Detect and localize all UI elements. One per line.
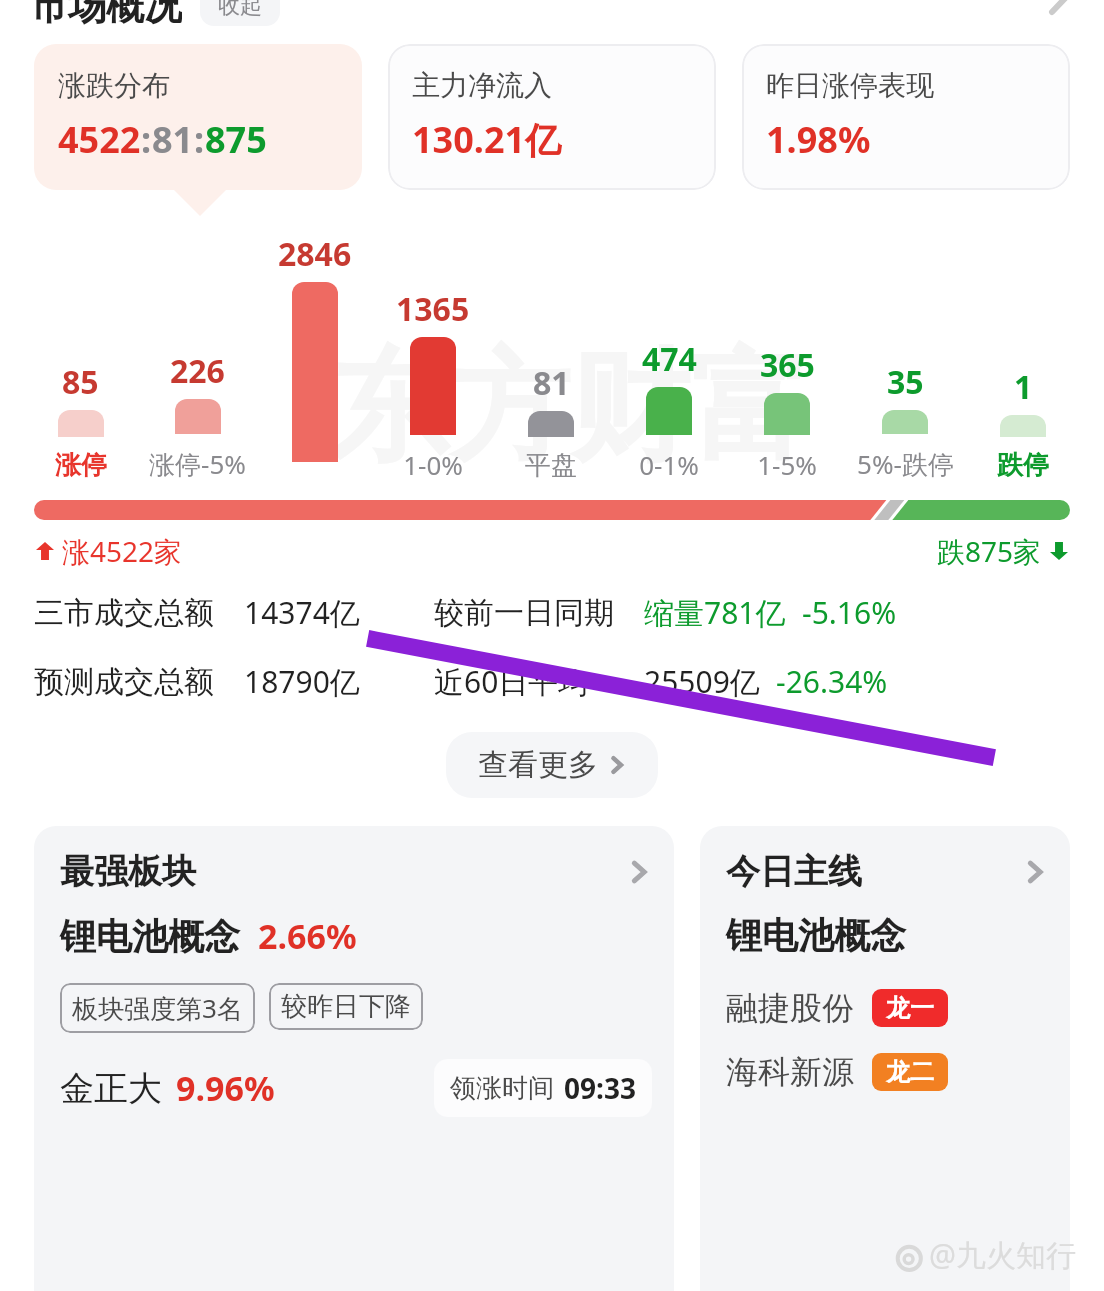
staticText: 三市成交总额 [34, 594, 244, 632]
button[interactable]: 85 [22, 232, 139, 482]
staticText: 跌875家 [937, 532, 1042, 570]
staticText: 1.98% [766, 115, 871, 164]
button[interactable]: 474 [610, 232, 728, 482]
staticText: 近60日平均 [434, 661, 644, 702]
staticText: 平盘 [525, 449, 577, 482]
button[interactable]: 2846 [256, 232, 374, 482]
button[interactable]: 查看更多 [446, 732, 658, 798]
button[interactable]: 板块强度第3名 [60, 983, 255, 1033]
staticText: 35 [887, 360, 924, 404]
staticText: 1-0% [403, 447, 463, 482]
staticText: 4522 [58, 115, 141, 164]
staticText: 板块强度第3名 [72, 990, 243, 1026]
staticText: 81 [533, 361, 570, 405]
staticText: 融捷股份 [726, 988, 854, 1028]
staticText: 25509亿 [644, 661, 760, 702]
button[interactable]: 1365 [374, 232, 492, 482]
staticText: 474 [642, 337, 697, 381]
staticText: 1365 [396, 287, 470, 331]
staticText: 81 [152, 115, 194, 164]
staticText: 预测成交总额 [34, 663, 244, 701]
staticText: 2.66% [258, 913, 357, 959]
staticText: 14374亿 [244, 592, 434, 633]
staticText: 涨停-5% [149, 446, 246, 482]
staticText: 今日主线 [726, 850, 862, 893]
other: Open [626, 859, 652, 885]
button[interactable]: 81 [492, 232, 610, 482]
staticText: 365 [760, 343, 815, 387]
staticText: 东方财富 [330, 332, 810, 482]
staticText: 最强板块 [60, 850, 196, 893]
staticText: 226 [170, 349, 225, 393]
staticText: 锂电池概念 [726, 913, 906, 958]
staticText: 09:33 [564, 1069, 636, 1107]
staticText: 跌停 [997, 449, 1049, 482]
staticText: 较昨日下降 [281, 990, 411, 1023]
staticText: 0-1% [639, 447, 699, 482]
staticText: 较前一日同期 [434, 594, 644, 632]
button[interactable]: 最强板块 [34, 826, 674, 1291]
staticText: 涨跌分布 [58, 68, 170, 103]
staticText: 领涨时间 [450, 1072, 554, 1105]
button[interactable]: 1 [964, 232, 1082, 482]
staticText: 涨4522家 [62, 532, 183, 570]
staticText: : [141, 115, 152, 164]
staticText: 锂电池概念 [60, 914, 240, 959]
staticText: 1 [1014, 365, 1033, 409]
button[interactable]: More [1040, 0, 1080, 24]
staticText: 查看更多 [478, 746, 598, 784]
staticText: -5.16% [802, 592, 897, 633]
staticText: 9.96% [176, 1065, 275, 1111]
button[interactable]: 365 [728, 232, 846, 482]
staticText: 海科新源 [726, 1052, 854, 1092]
button[interactable]: 35 [846, 232, 964, 482]
staticText: 涨停 [55, 449, 107, 482]
button[interactable]: 昨日涨停表现 [742, 44, 1070, 190]
staticText: 主力净流入 [412, 68, 552, 103]
staticText: 18790亿 [244, 661, 434, 702]
staticText: 85 [62, 360, 99, 404]
staticText: @九火知行 [929, 1234, 1076, 1275]
other: Open [1022, 859, 1048, 885]
staticText: 龙一 [886, 993, 934, 1023]
staticText: : [194, 115, 205, 164]
button[interactable]: 较昨日下降 [269, 983, 423, 1030]
staticText: 昨日涨停表现 [766, 68, 934, 103]
staticText: 龙二 [886, 1057, 934, 1087]
staticText: 5%-跌停 [857, 446, 954, 482]
button[interactable]: 226 [139, 232, 256, 482]
button[interactable]: 今日主线 [700, 826, 1070, 1291]
staticText: 缩量781亿 [644, 592, 786, 633]
staticText: 收起 [218, 0, 262, 20]
staticText: 2846 [278, 232, 352, 276]
button[interactable]: 主力净流入 [388, 44, 716, 190]
staticText: 金正大 [60, 1067, 162, 1110]
staticText: 1-5% [757, 447, 817, 482]
button[interactable]: 收起 [200, 0, 280, 26]
button[interactable]: 涨跌分布 [34, 44, 362, 190]
staticText: -26.34% [776, 661, 888, 702]
staticText: 875 [205, 115, 267, 164]
staticText: 130.21亿 [412, 115, 562, 164]
staticText: 市场概况 [30, 0, 182, 26]
